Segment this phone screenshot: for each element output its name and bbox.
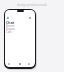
staticText: Calls [6, 30, 12, 33]
button[interactable]: Home [6, 61, 11, 66]
button[interactable]: Settings [26, 61, 31, 66]
button[interactable]: Calls [5, 30, 35, 33]
staticText: Chat [6, 20, 15, 25]
button[interactable]: Groups [5, 27, 35, 30]
button[interactable]: Menu [6, 16, 9, 19]
button[interactable]: Recent [5, 24, 35, 27]
staticText: Recent [6, 24, 15, 27]
staticText: Groups [6, 27, 15, 30]
button[interactable]: Search [17, 61, 22, 66]
button[interactable]: Profile [28, 16, 31, 19]
staticText: design preview mock [17, 3, 47, 7]
